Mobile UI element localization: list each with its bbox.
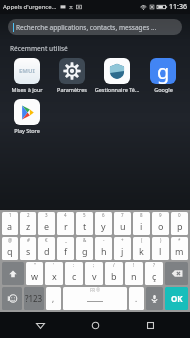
button[interactable]: 3 bbox=[38, 212, 55, 235]
button[interactable]: 9 bbox=[152, 212, 169, 235]
button[interactable]: - bbox=[95, 237, 112, 260]
staticText: ? bbox=[153, 262, 155, 268]
staticText: ?123 bbox=[25, 293, 43, 304]
button[interactable]: ?123 bbox=[24, 287, 44, 310]
staticText: 3 bbox=[45, 212, 48, 218]
staticText: 11:36 bbox=[169, 2, 187, 12]
staticText: e bbox=[44, 220, 50, 232]
button[interactable]: Play Store bbox=[4, 96, 49, 137]
button[interactable]: " bbox=[26, 262, 43, 285]
staticText: Play Store bbox=[14, 127, 40, 134]
button[interactable]: Recent apps bbox=[135, 312, 165, 338]
button[interactable]: Paramètres bbox=[49, 55, 94, 96]
button[interactable]: Space bbox=[63, 287, 127, 310]
button[interactable]: ; bbox=[85, 262, 103, 285]
button[interactable]: OK bbox=[165, 287, 188, 310]
staticText: OK bbox=[171, 293, 183, 304]
staticText: l bbox=[159, 245, 162, 257]
button[interactable]: + bbox=[114, 237, 131, 260]
button[interactable]: Backspace bbox=[165, 262, 188, 285]
staticText: 8 bbox=[140, 212, 143, 218]
staticText: a bbox=[7, 220, 13, 232]
button[interactable]: , bbox=[46, 287, 61, 310]
button[interactable]: Back bbox=[25, 312, 55, 338]
button[interactable]: # bbox=[20, 237, 36, 260]
staticText: Paramètres bbox=[57, 86, 87, 93]
staticText: 4 bbox=[64, 212, 67, 218]
button[interactable]: 8 bbox=[133, 212, 150, 235]
staticText: Gestionnaire Tél... bbox=[94, 86, 140, 93]
staticText: . bbox=[135, 293, 138, 304]
button[interactable]: @ bbox=[2, 237, 18, 260]
staticText: Recherche applications, contacts, messag… bbox=[16, 23, 157, 32]
staticText: 5 bbox=[83, 212, 86, 218]
staticText: - bbox=[103, 237, 105, 243]
staticText: s bbox=[26, 245, 31, 257]
button[interactable]: 7 bbox=[114, 212, 131, 235]
button[interactable]: € bbox=[38, 237, 55, 260]
button[interactable]: ' bbox=[45, 262, 63, 285]
button[interactable]: Home bbox=[80, 312, 110, 338]
staticText: & bbox=[83, 237, 87, 243]
button[interactable]: * bbox=[171, 237, 188, 260]
staticText: + bbox=[121, 237, 124, 243]
button[interactable]: 1 bbox=[2, 212, 18, 235]
staticText: ! bbox=[133, 262, 135, 268]
staticText: @ bbox=[8, 237, 13, 243]
staticText: w bbox=[31, 270, 39, 282]
staticText: g bbox=[157, 58, 170, 84]
button[interactable]: _ bbox=[57, 237, 74, 260]
staticText: j bbox=[121, 245, 124, 257]
staticText: Google bbox=[154, 86, 173, 93]
button[interactable]: Emoji bbox=[2, 287, 22, 310]
staticText: # bbox=[27, 237, 30, 243]
staticText: y bbox=[101, 220, 106, 232]
button[interactable]: & bbox=[76, 237, 93, 260]
staticText: b bbox=[111, 270, 117, 282]
staticText: , bbox=[52, 293, 55, 304]
staticText: n bbox=[131, 270, 137, 282]
staticText: 2 bbox=[27, 212, 30, 218]
button[interactable]: ! bbox=[125, 262, 143, 285]
staticText: 0 bbox=[178, 212, 181, 218]
button[interactable]: Voice input bbox=[146, 287, 163, 310]
staticText: x bbox=[52, 270, 57, 282]
staticText: _ bbox=[65, 237, 67, 243]
staticText: 7 bbox=[121, 212, 124, 218]
staticText: d bbox=[44, 245, 50, 257]
button[interactable]: . bbox=[129, 287, 144, 310]
button[interactable]: / bbox=[105, 262, 123, 285]
button[interactable]: : bbox=[65, 262, 83, 285]
staticText: ( bbox=[141, 237, 143, 243]
staticText: " bbox=[34, 262, 36, 268]
button[interactable]: g bbox=[140, 55, 186, 96]
button[interactable]: EMUI bbox=[4, 55, 49, 96]
staticText: u bbox=[120, 220, 126, 232]
button[interactable]: ( bbox=[133, 237, 150, 260]
button[interactable]: Shift bbox=[2, 262, 24, 285]
button[interactable]: ? bbox=[145, 262, 163, 285]
button[interactable]: 2 bbox=[20, 212, 36, 235]
staticText: 1 bbox=[9, 212, 12, 218]
staticText: ç bbox=[152, 270, 157, 282]
button[interactable]: 4 bbox=[57, 212, 74, 235]
staticText: o bbox=[158, 220, 164, 232]
button[interactable]: 5 bbox=[76, 212, 93, 235]
staticText: / bbox=[113, 262, 115, 268]
staticText: ' bbox=[53, 262, 55, 268]
staticText: c bbox=[72, 270, 77, 282]
button[interactable]: ) bbox=[152, 237, 169, 260]
button[interactable]: 0 bbox=[171, 212, 188, 235]
staticText: h bbox=[101, 245, 107, 257]
staticText: FR ® bbox=[90, 287, 101, 293]
staticText: Appels d'urgence... bbox=[3, 3, 57, 11]
staticText: ) bbox=[160, 237, 162, 243]
button[interactable]: Recherche applications, contacts, messag… bbox=[8, 19, 182, 35]
staticText: f bbox=[64, 245, 68, 257]
button[interactable]: Gestionnaire Tél... bbox=[94, 55, 140, 96]
staticText: * bbox=[178, 237, 181, 243]
staticText: i bbox=[140, 220, 143, 232]
button[interactable]: 6 bbox=[95, 212, 112, 235]
staticText: EMUI bbox=[19, 67, 35, 75]
staticText: t bbox=[83, 220, 87, 232]
